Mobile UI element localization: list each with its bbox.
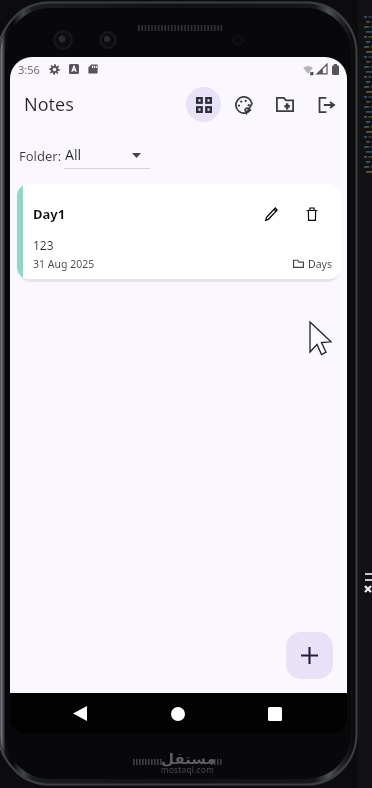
button[interactable]: Logout — [309, 88, 342, 121]
button[interactable]: New folder — [268, 88, 301, 121]
staticText: All — [65, 145, 82, 164]
staticText: Days — [308, 257, 332, 271]
button[interactable]: Home — [159, 695, 197, 732]
staticText: Day1 — [33, 205, 66, 223]
button[interactable]: Theme — [227, 88, 260, 121]
staticText: Folder: — [19, 147, 62, 165]
staticText: 123 — [33, 237, 54, 253]
button[interactable]: Edit note — [257, 200, 285, 228]
staticText: مستقل — [161, 750, 216, 767]
button[interactable]: Delete note — [298, 200, 326, 228]
staticText: 31 Aug 2025 — [33, 257, 95, 271]
staticText: 3:56 — [18, 62, 40, 77]
button[interactable]: Recent apps — [256, 695, 294, 732]
button[interactable]: All — [64, 144, 150, 169]
staticText: Notes — [24, 92, 74, 117]
staticText: mostaql.com — [161, 764, 215, 775]
button[interactable]: Add note — [286, 632, 333, 679]
button[interactable]: Grid view — [186, 87, 221, 122]
button[interactable]: Back — [61, 695, 99, 732]
button[interactable]: Day1 — [17, 184, 341, 279]
